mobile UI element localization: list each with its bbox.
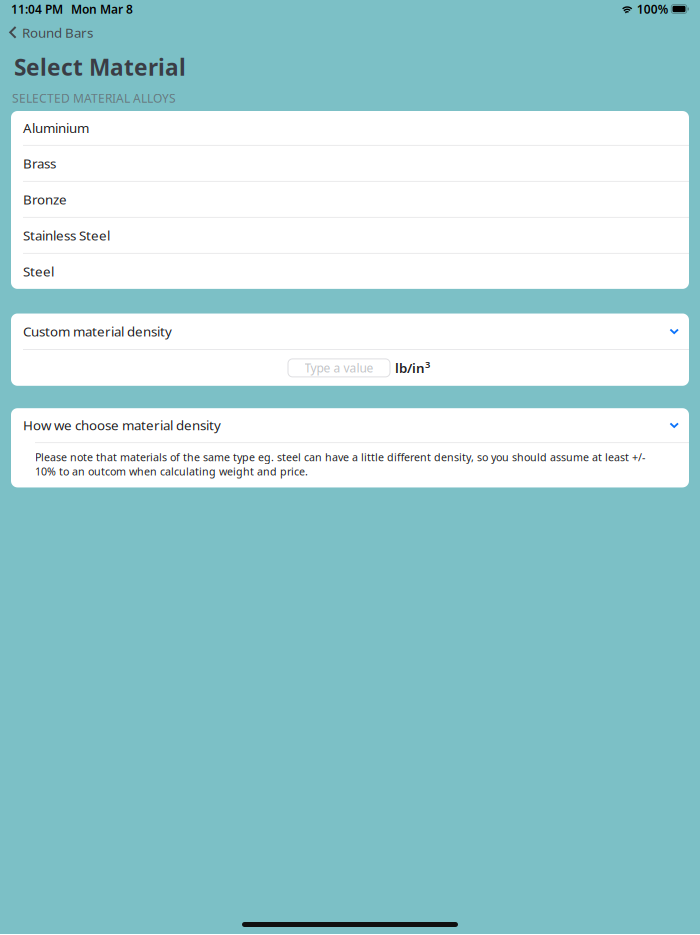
staticText: Please note that materials of the same t… bbox=[35, 450, 645, 478]
staticText: 3 bbox=[425, 358, 430, 371]
button[interactable]: Aluminium bbox=[11, 111, 689, 146]
button[interactable]: How we choose material density bbox=[11, 408, 689, 442]
button[interactable]: Bronze bbox=[11, 182, 689, 218]
staticText: Select Material bbox=[14, 52, 186, 82]
staticText: Type a value bbox=[304, 360, 373, 376]
staticText: 100% bbox=[637, 1, 669, 17]
staticText: Mon Mar 8 bbox=[71, 1, 133, 17]
staticText: Custom material density bbox=[23, 322, 172, 340]
staticText: 11:04 PM bbox=[11, 1, 63, 17]
button[interactable]: Brass bbox=[11, 146, 689, 182]
button[interactable]: Steel bbox=[11, 254, 689, 289]
button[interactable]: Stainless Steel bbox=[11, 218, 689, 254]
staticText: SELECTED MATERIAL ALLOYS bbox=[12, 90, 176, 106]
staticText: Brass bbox=[23, 154, 56, 172]
button[interactable]: Custom material density bbox=[11, 313, 689, 349]
staticText: lb/in bbox=[395, 359, 425, 377]
staticText: How we choose material density bbox=[23, 416, 221, 434]
staticText: Bronze bbox=[23, 190, 67, 208]
staticText: Steel bbox=[23, 262, 54, 280]
staticText: Aluminium bbox=[23, 119, 89, 137]
button[interactable]: Round Bars bbox=[0, 18, 700, 47]
staticText: Stainless Steel bbox=[23, 226, 110, 244]
staticText: Round Bars bbox=[22, 24, 93, 41]
